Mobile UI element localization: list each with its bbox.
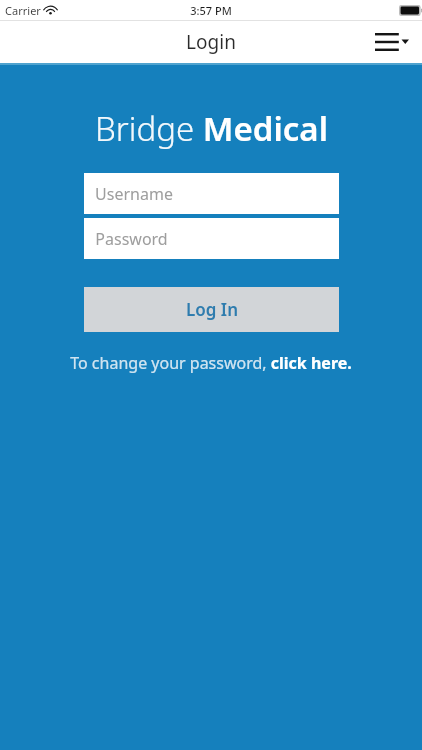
staticText: Log In (186, 298, 238, 321)
staticText: 3:57 PM (190, 3, 232, 18)
staticText: Password (95, 228, 168, 250)
staticText: To change your password, click here. (70, 352, 352, 374)
button[interactable]: Log In (84, 287, 339, 332)
staticText: Username (95, 183, 173, 205)
button[interactable]: To change your password, click here. (64, 350, 358, 376)
button[interactable]: Menu (370, 22, 414, 62)
staticText: Login (186, 29, 236, 55)
button[interactable]: Username (84, 173, 339, 214)
button[interactable]: Password (84, 218, 339, 259)
staticText: Bridge Medical (95, 106, 328, 151)
staticText: Carrier (5, 3, 41, 18)
